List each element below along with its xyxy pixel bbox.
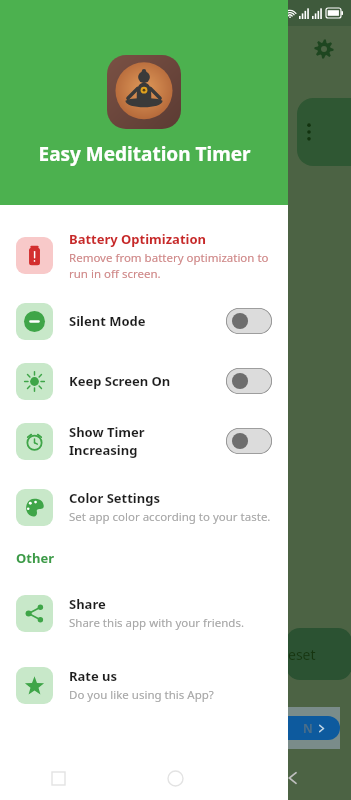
button[interactable]: Settings xyxy=(309,34,339,64)
staticText: Share xyxy=(69,595,106,613)
staticText: Rate us xyxy=(69,667,118,685)
staticText: N xyxy=(303,720,313,736)
button[interactable]: Color Settings xyxy=(0,471,288,543)
button[interactable]: Silent Mode xyxy=(0,291,288,351)
staticText: Show Timer Increasing xyxy=(69,423,179,459)
staticText: Share this app with your friends. xyxy=(69,615,245,631)
staticText: Other xyxy=(16,549,54,567)
button[interactable]: Silent Mode toggle xyxy=(226,308,272,334)
button[interactable]: Share xyxy=(0,577,288,649)
staticText: Set app color according to your taste. xyxy=(69,509,271,525)
staticText: eset xyxy=(288,645,316,664)
button[interactable]: N xyxy=(288,716,340,740)
staticText: Easy Meditation Timer xyxy=(38,141,251,167)
other: Recents xyxy=(52,772,65,785)
staticText: Silent Mode xyxy=(69,312,219,330)
button[interactable]: eset xyxy=(286,628,351,680)
button[interactable]: Rate us xyxy=(0,649,288,721)
button[interactable]: Keep Screen On toggle xyxy=(226,368,272,394)
other: Home xyxy=(168,771,183,786)
button[interactable]: Show Timer Increasing xyxy=(0,411,288,471)
button[interactable]: Battery Optimization xyxy=(0,219,288,291)
staticText: Keep Screen On xyxy=(69,372,219,390)
staticText: Do you like using this App? xyxy=(69,687,214,703)
button[interactable]: Keep Screen On xyxy=(0,351,288,411)
staticText: Remove from battery optimization to run … xyxy=(69,250,272,281)
staticText: Color Settings xyxy=(69,489,160,507)
staticText: Battery Optimization xyxy=(69,230,206,248)
button[interactable]: Show Timer Increasing toggle xyxy=(226,428,272,454)
other: Back xyxy=(286,771,300,785)
